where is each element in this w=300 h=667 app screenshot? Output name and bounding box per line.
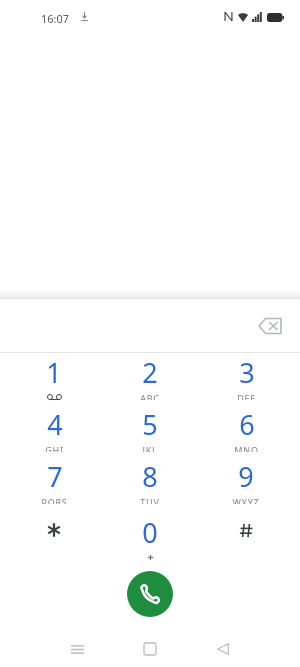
button[interactable]: 6 (206, 406, 286, 452)
staticText: DEF (237, 392, 256, 400)
button[interactable]: 0 (110, 514, 190, 560)
staticText: TUV (140, 496, 160, 504)
button[interactable]: 4 (14, 406, 94, 452)
staticText: 0 (142, 514, 158, 551)
staticText: 1 (46, 354, 62, 391)
button[interactable]: 9 (206, 458, 286, 504)
staticText: 9 (238, 458, 254, 495)
staticText: 6 (239, 406, 255, 443)
button[interactable]: 8 (110, 458, 190, 504)
button[interactable]: Recents (59, 631, 95, 667)
button[interactable]: Backspace (252, 308, 288, 344)
staticText: 5 (142, 406, 158, 443)
button[interactable]: Call (127, 571, 173, 617)
staticText: JKL (142, 444, 158, 452)
button[interactable] (14, 514, 94, 560)
staticText: 4 (47, 406, 63, 443)
staticText: MNO (234, 444, 259, 452)
staticText: 7 (47, 458, 63, 495)
staticText: WXYZ (232, 496, 260, 504)
button[interactable] (206, 514, 286, 560)
staticText: ABC (140, 392, 160, 400)
staticText: PQRS (41, 496, 68, 504)
staticText: GHI (45, 444, 64, 452)
button[interactable]: 3 (206, 354, 286, 400)
staticText: 16:07 (41, 11, 70, 26)
button[interactable]: Home (132, 631, 168, 667)
staticText: 8 (142, 458, 158, 495)
button[interactable]: 1 (14, 354, 94, 400)
button[interactable]: Back (205, 631, 241, 667)
button[interactable]: 2 (110, 354, 190, 400)
button[interactable]: 5 (110, 406, 190, 452)
staticText: 3 (239, 354, 255, 391)
button[interactable]: 7 (14, 458, 94, 504)
staticText: 2 (142, 354, 158, 391)
